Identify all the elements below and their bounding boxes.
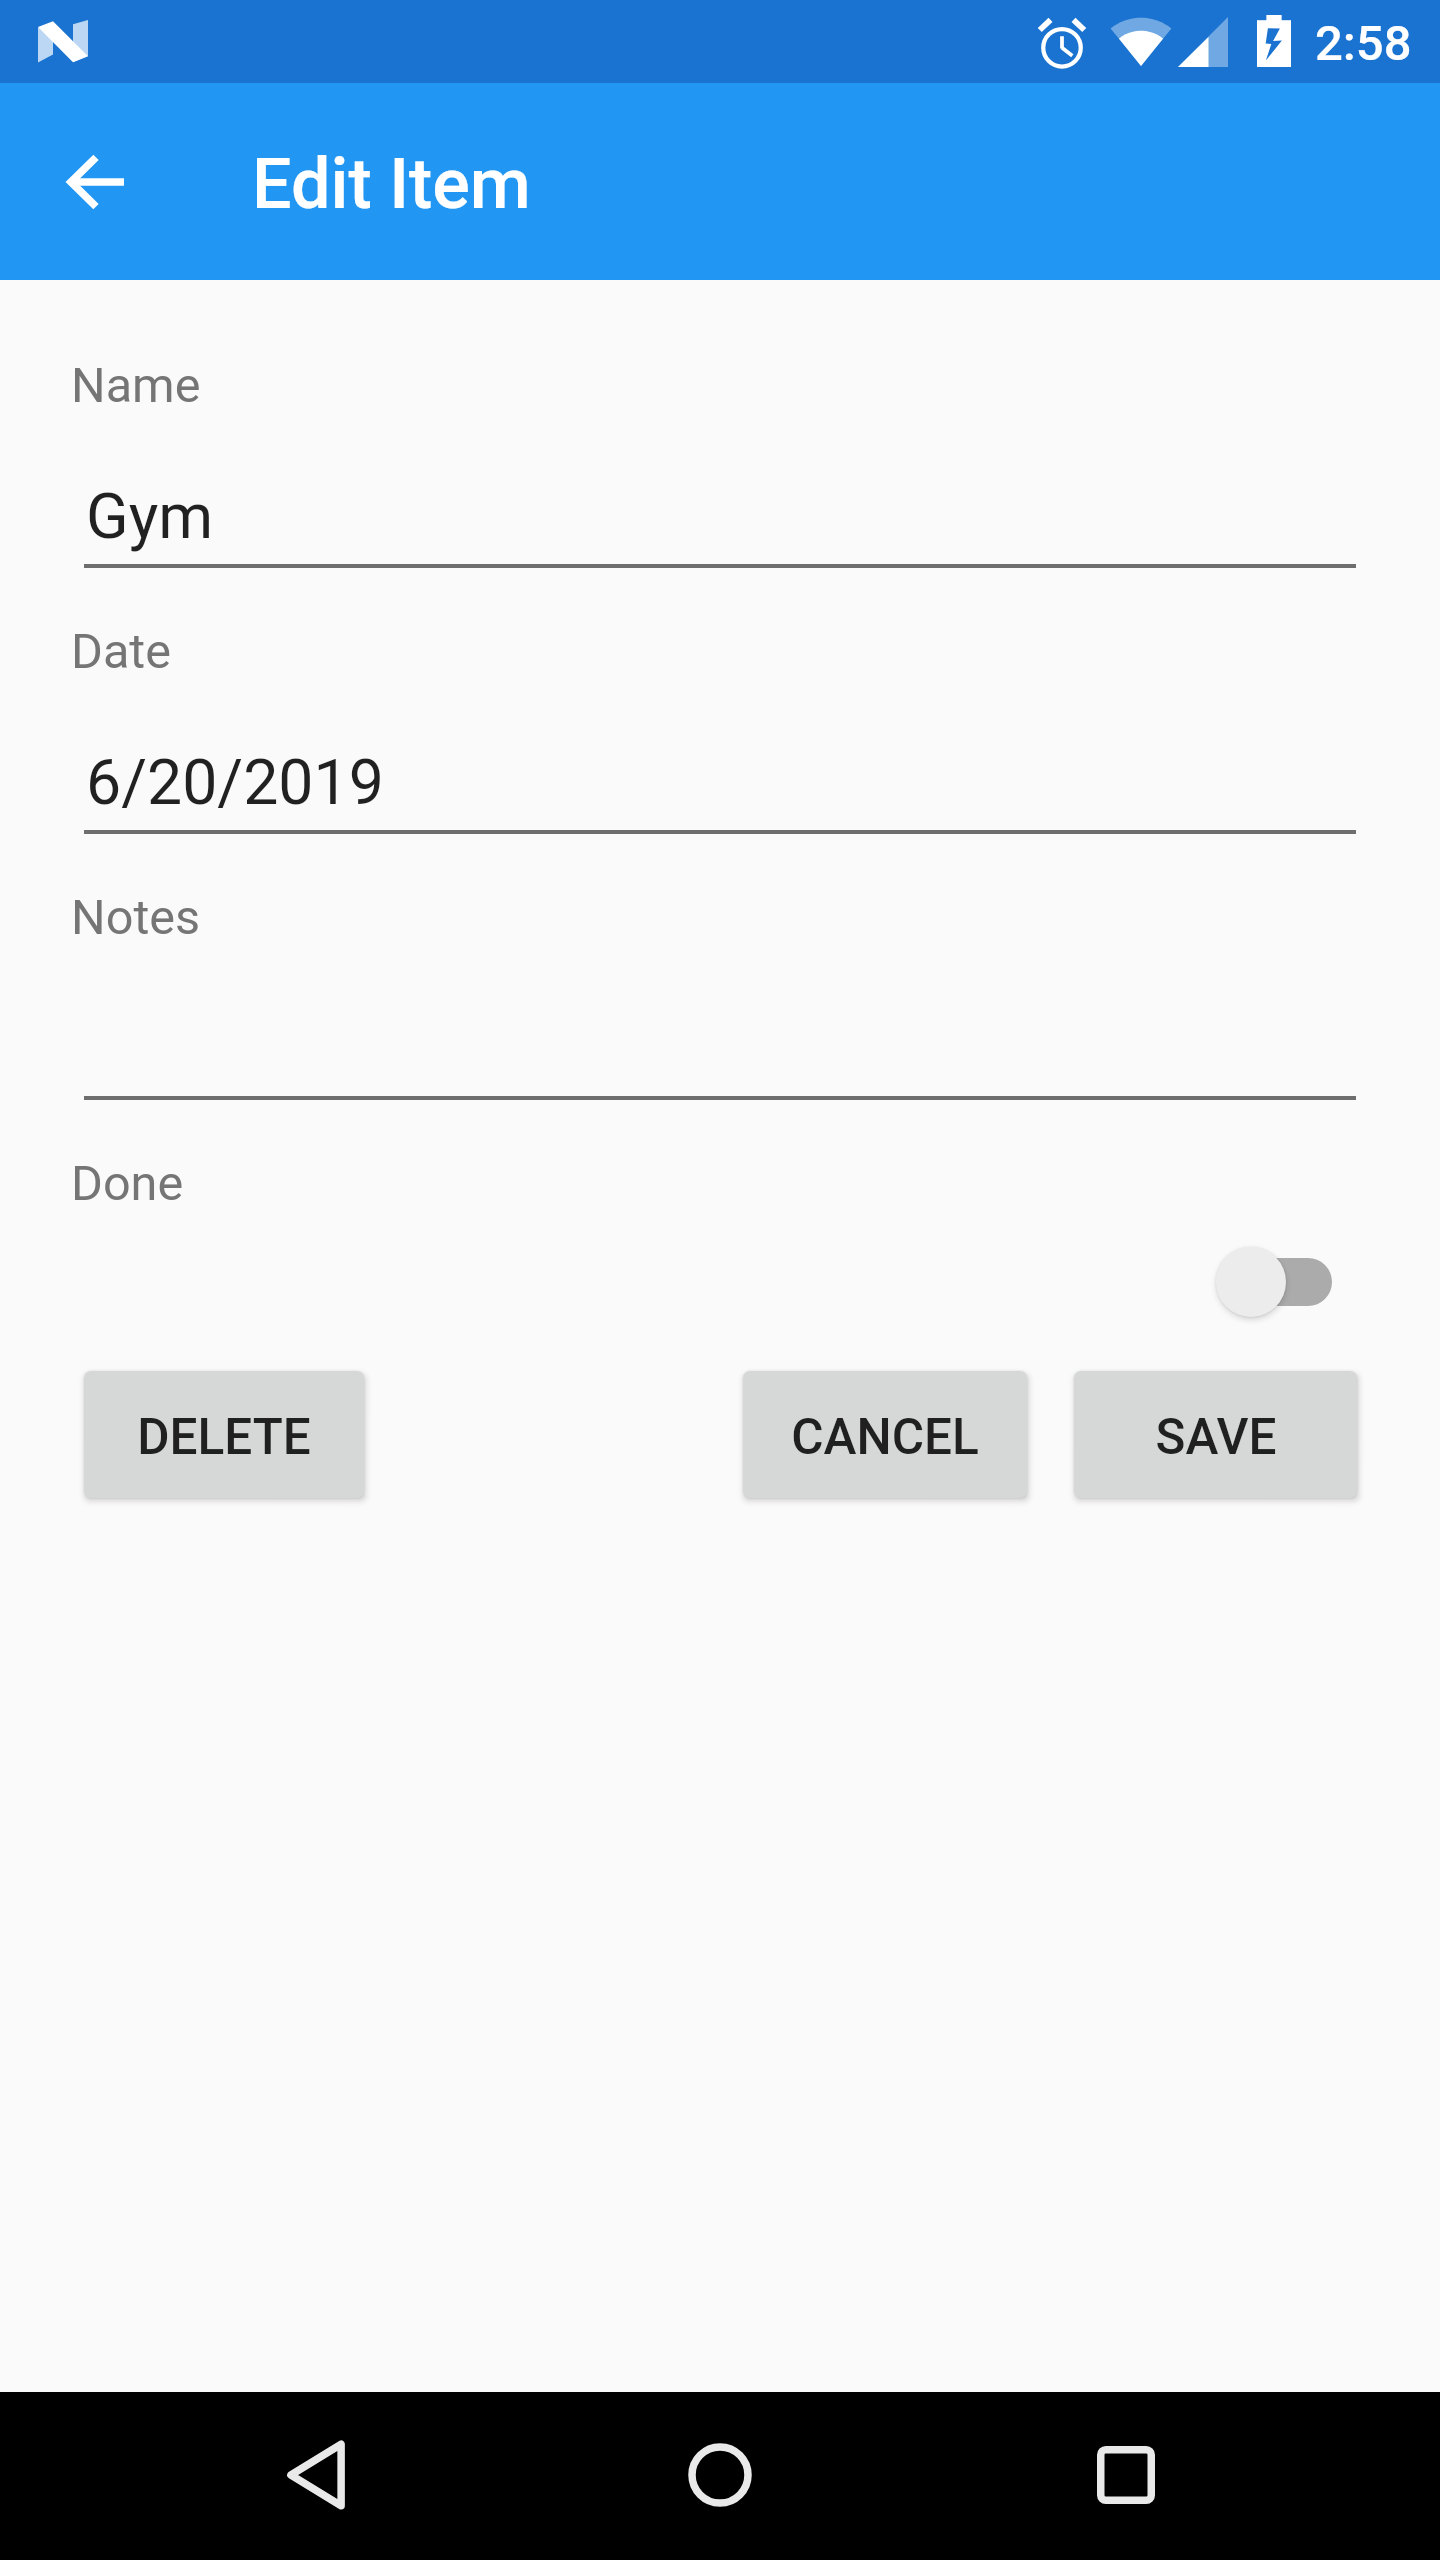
staticText: Done bbox=[71, 1155, 184, 1212]
button[interactable]: DELETE bbox=[84, 1371, 364, 1498]
staticText: Name bbox=[71, 357, 201, 414]
button[interactable]: Back bbox=[246, 2406, 386, 2546]
button[interactable]: CANCEL bbox=[743, 1371, 1027, 1498]
button[interactable]: SAVE bbox=[1074, 1371, 1357, 1498]
staticText: Edit Item bbox=[252, 143, 531, 225]
button[interactable]: Navigate up bbox=[54, 140, 138, 224]
staticText: Notes bbox=[71, 889, 201, 946]
button[interactable]: Recent apps bbox=[1056, 2406, 1196, 2546]
button[interactable]: Done bbox=[1211, 1234, 1371, 1330]
button[interactable]: Date bbox=[0, 600, 1440, 856]
staticText: 6/20/2019 bbox=[86, 746, 384, 819]
staticText: Gym bbox=[86, 480, 214, 553]
staticText: 2:58 bbox=[1315, 15, 1412, 72]
button[interactable]: Notes bbox=[0, 866, 1440, 1123]
staticText: SAVE bbox=[1155, 1408, 1277, 1466]
staticText: CANCEL bbox=[791, 1408, 979, 1466]
staticText: DELETE bbox=[137, 1408, 311, 1466]
button[interactable]: Home bbox=[650, 2406, 790, 2546]
button[interactable]: Name bbox=[0, 320, 1440, 590]
staticText: Date bbox=[71, 623, 171, 680]
